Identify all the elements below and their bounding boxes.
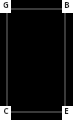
staticText: G [3, 0, 9, 10]
button[interactable]: B [62, 0, 73, 13]
staticText: C [3, 105, 9, 116]
button[interactable]: G [0, 0, 11, 13]
staticText: B [64, 0, 70, 10]
button[interactable]: E [62, 106, 73, 120]
button[interactable]: C [0, 106, 11, 120]
staticText: E [64, 105, 69, 116]
